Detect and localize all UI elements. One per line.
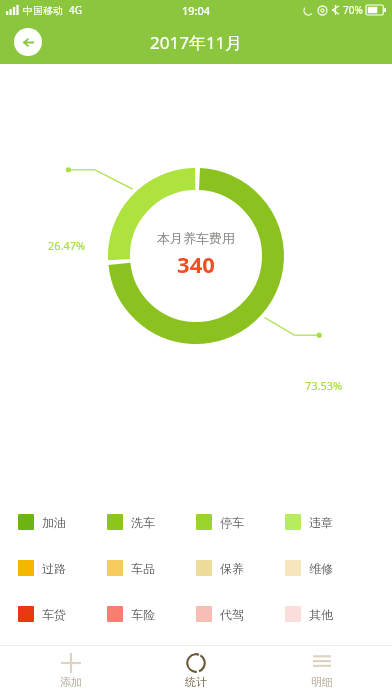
staticText: 统计 xyxy=(185,675,207,689)
button[interactable]: 过路 xyxy=(18,560,107,576)
button[interactable]: 违章 xyxy=(285,514,374,530)
button[interactable]: 洗车 xyxy=(107,514,196,530)
button[interactable]: 维修 xyxy=(285,560,374,576)
staticText: 违章 xyxy=(309,515,333,530)
staticText: 添加 xyxy=(60,675,82,689)
staticText: 26.47% xyxy=(48,238,86,253)
button[interactable]: 明细 xyxy=(267,649,377,693)
staticText: 2017年11月 xyxy=(150,31,243,54)
button[interactable]: 车品 xyxy=(107,560,196,576)
staticText: 洗车 xyxy=(131,515,155,530)
button[interactable]: 其他 xyxy=(285,606,374,622)
staticText: 维修 xyxy=(309,561,333,576)
button[interactable]: 统计 xyxy=(141,649,251,693)
staticText: 其他 xyxy=(309,607,333,622)
button[interactable]: 保养 xyxy=(196,560,285,576)
staticText: 19:04 xyxy=(182,3,211,18)
button[interactable]: 加油 xyxy=(18,514,107,530)
staticText: 车贷 xyxy=(42,607,66,622)
staticText: 340 xyxy=(177,249,215,279)
staticText: 中国移动 xyxy=(23,4,63,17)
staticText: 代驾 xyxy=(220,607,244,622)
staticText: 保养 xyxy=(220,561,244,576)
staticText: 车险 xyxy=(131,607,155,622)
staticText: 4G xyxy=(69,3,82,17)
staticText: 明细 xyxy=(311,675,333,689)
button[interactable]: 车险 xyxy=(107,606,196,622)
button[interactable]: 添加 xyxy=(16,649,126,693)
staticText: 过路 xyxy=(42,561,66,576)
staticText: 73.53% xyxy=(305,378,343,393)
staticText: 本月养车费用 xyxy=(157,230,235,246)
staticText: 停车 xyxy=(220,515,244,530)
staticText: 70% xyxy=(343,3,363,17)
staticText: 加油 xyxy=(42,515,66,530)
button[interactable]: 停车 xyxy=(196,514,285,530)
button[interactable]: 车贷 xyxy=(18,606,107,622)
button[interactable]: 代驾 xyxy=(196,606,285,622)
staticText: 车品 xyxy=(131,561,155,576)
button[interactable]: Back xyxy=(14,28,42,56)
